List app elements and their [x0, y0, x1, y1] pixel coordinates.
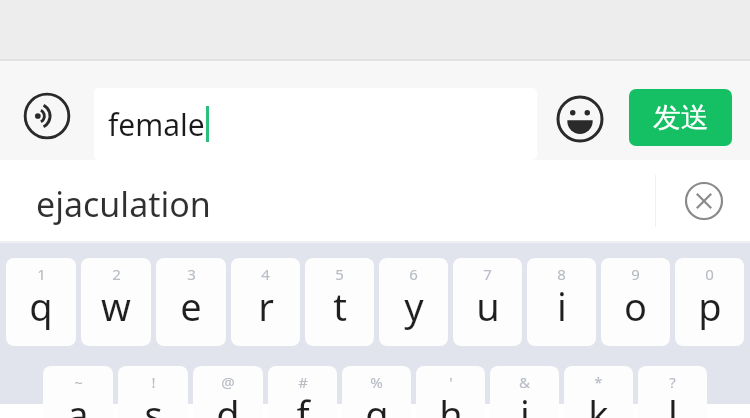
- staticText: 8: [557, 264, 566, 284]
- staticText: %: [370, 372, 383, 392]
- staticText: p: [698, 280, 722, 332]
- staticText: k: [588, 388, 609, 418]
- staticText: e: [180, 280, 202, 332]
- staticText: g: [365, 388, 389, 418]
- staticText: i: [557, 280, 567, 332]
- button[interactable]: female: [94, 88, 537, 160]
- staticText: 2: [112, 264, 121, 284]
- staticText: d: [216, 388, 240, 418]
- staticText: #: [298, 372, 308, 392]
- staticText: o: [624, 280, 647, 332]
- button[interactable]: ': [416, 366, 485, 418]
- staticText: w: [101, 280, 131, 332]
- button[interactable]: ejaculation: [0, 160, 750, 241]
- staticText: 7: [483, 264, 492, 284]
- staticText: a: [67, 388, 89, 418]
- button[interactable]: @: [193, 366, 263, 418]
- staticText: &: [519, 372, 530, 392]
- staticText: 1: [37, 264, 46, 284]
- staticText: ?: [669, 372, 676, 392]
- button[interactable]: 7: [453, 258, 522, 346]
- staticText: y: [404, 280, 424, 332]
- staticText: 4: [261, 264, 270, 284]
- staticText: q: [29, 280, 53, 332]
- button[interactable]: !: [118, 366, 188, 418]
- button[interactable]: 6: [379, 258, 448, 346]
- staticText: female: [108, 104, 205, 145]
- button[interactable]: 4: [231, 258, 300, 346]
- staticText: j: [520, 388, 530, 418]
- staticText: l: [668, 388, 678, 418]
- staticText: r: [258, 280, 274, 332]
- staticText: ': [449, 372, 453, 392]
- button[interactable]: &: [490, 366, 559, 418]
- button[interactable]: *: [564, 366, 633, 418]
- staticText: 9: [631, 264, 640, 284]
- button[interactable]: 9: [601, 258, 670, 346]
- button[interactable]: Emoji: [551, 90, 609, 148]
- staticText: f: [296, 388, 310, 418]
- button[interactable]: 2: [81, 258, 151, 346]
- staticText: 0: [705, 264, 714, 284]
- button[interactable]: 0: [675, 258, 744, 346]
- button[interactable]: 3: [156, 258, 226, 346]
- button[interactable]: 8: [527, 258, 596, 346]
- staticText: 3: [187, 264, 196, 284]
- staticText: 5: [335, 264, 344, 284]
- button[interactable]: 发送: [629, 89, 732, 146]
- button[interactable]: Close suggestion: [678, 175, 730, 227]
- staticText: 6: [409, 264, 418, 284]
- staticText: u: [476, 280, 500, 332]
- button[interactable]: ~: [43, 366, 113, 418]
- button[interactable]: 1: [6, 258, 76, 346]
- staticText: s: [144, 388, 163, 418]
- staticText: *: [594, 372, 603, 392]
- staticText: 发送: [653, 100, 709, 135]
- staticText: h: [439, 388, 463, 418]
- button[interactable]: %: [342, 366, 411, 418]
- staticText: @: [221, 372, 235, 392]
- staticText: ejaculation: [36, 181, 211, 227]
- button[interactable]: #: [268, 366, 337, 418]
- staticText: ~: [74, 372, 83, 392]
- staticText: t: [333, 280, 347, 332]
- button[interactable]: ?: [638, 366, 707, 418]
- button[interactable]: 5: [305, 258, 374, 346]
- staticText: !: [151, 372, 156, 392]
- button[interactable]: Voice input: [18, 87, 76, 145]
